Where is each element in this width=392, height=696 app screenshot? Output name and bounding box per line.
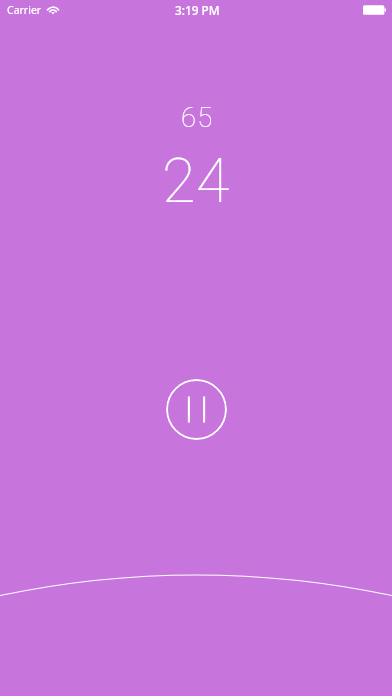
staticText: Carrier: [7, 3, 42, 17]
other: Wi-Fi: [47, 5, 59, 15]
staticText: 3:19 PM: [175, 2, 220, 18]
staticText: 24: [162, 138, 230, 228]
button[interactable]: Pause: [166, 379, 227, 440]
staticText: 65: [181, 98, 214, 138]
other: Battery full: [363, 5, 386, 15]
